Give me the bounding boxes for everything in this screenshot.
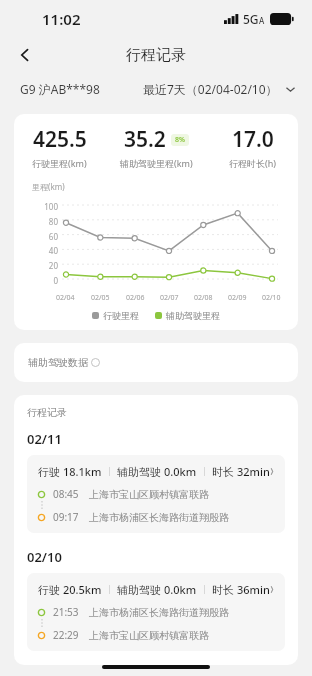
staticText: 时长 bbox=[212, 582, 237, 597]
staticText: 行驶里程 bbox=[103, 310, 139, 321]
staticText: 21:53 bbox=[53, 605, 79, 619]
staticText: 08:45 bbox=[53, 487, 79, 501]
staticText: 18.1km bbox=[63, 464, 102, 479]
staticText: 35.2 bbox=[124, 125, 166, 154]
staticText: 02/06 bbox=[126, 293, 145, 303]
staticText: 17.0 bbox=[232, 125, 274, 154]
staticText: 425.5 bbox=[33, 125, 87, 154]
staticText: 60 bbox=[28, 231, 58, 242]
staticText: 0.0km bbox=[164, 464, 197, 479]
staticText: 辅助驾驶 bbox=[117, 582, 164, 597]
button[interactable]: 行驶 bbox=[27, 573, 285, 651]
staticText: 辅助驾驶数据 bbox=[28, 356, 88, 369]
staticText: 02/10 bbox=[27, 548, 62, 566]
staticText: 辅助驾驶 bbox=[117, 464, 164, 479]
staticText: 8% bbox=[175, 135, 185, 145]
staticText: 上海市宝山区顾村镇富联路 bbox=[89, 488, 209, 501]
staticText: 02/05 bbox=[91, 293, 110, 303]
staticText: 上海市杨浦区长海路街道翔殷路 bbox=[89, 606, 229, 619]
staticText: 100 bbox=[28, 201, 58, 212]
staticText: 上海市宝山区顾村镇富联路 bbox=[89, 629, 209, 642]
staticText: 20.5km bbox=[63, 582, 102, 597]
button[interactable]: G9 沪AB***98 bbox=[20, 81, 100, 97]
button[interactable]: 辅助驾驶数据 bbox=[14, 343, 298, 382]
staticText: 11:02 bbox=[42, 9, 81, 29]
staticText: 里程(km) bbox=[32, 181, 65, 192]
staticText: G9 沪AB***98 bbox=[20, 81, 100, 97]
staticText: 行程时长(h) bbox=[229, 157, 276, 169]
staticText: 02/07 bbox=[160, 293, 179, 303]
staticText: 02/09 bbox=[228, 293, 247, 303]
staticText: 行程记录 bbox=[27, 406, 67, 419]
button[interactable]: 行驶 bbox=[27, 455, 285, 533]
button[interactable]: 425.5 bbox=[14, 125, 105, 169]
staticText: 40 bbox=[28, 245, 58, 256]
staticText: 辅助驾驶里程 bbox=[166, 310, 220, 321]
staticText: 上海市杨浦区长海路街道翔殷路 bbox=[89, 511, 229, 524]
staticText: 20 bbox=[28, 260, 58, 271]
staticText: 最近7天（02/04-02/10） bbox=[143, 81, 278, 97]
button[interactable]: Back bbox=[8, 38, 42, 72]
staticText: 行程记录 bbox=[126, 46, 186, 65]
staticText: 行驶 bbox=[38, 582, 63, 597]
button[interactable]: 35.2 bbox=[105, 125, 207, 169]
staticText: 0.0km bbox=[164, 582, 197, 597]
staticText: 辅助驾驶里程(km) bbox=[120, 157, 193, 169]
staticText: 02/08 bbox=[194, 293, 213, 303]
staticText: 02/04 bbox=[56, 293, 75, 303]
button[interactable]: 17.0 bbox=[207, 125, 298, 169]
staticText: A bbox=[259, 15, 265, 26]
staticText: 36min bbox=[237, 582, 270, 597]
staticText: 80 bbox=[28, 216, 58, 227]
button[interactable]: 最近7天（02/04-02/10） bbox=[143, 81, 296, 97]
staticText: 行驶里程(km) bbox=[32, 157, 87, 169]
staticText: 0 bbox=[28, 275, 58, 286]
staticText: 09:17 bbox=[53, 510, 79, 524]
staticText: 02/10 bbox=[262, 293, 281, 303]
staticText: 32min bbox=[237, 464, 270, 479]
staticText: 22:29 bbox=[53, 628, 79, 642]
staticText: 行驶 bbox=[38, 464, 63, 479]
staticText: 时长 bbox=[212, 464, 237, 479]
staticText: 5G bbox=[243, 11, 259, 27]
staticText: 02/11 bbox=[27, 430, 62, 448]
